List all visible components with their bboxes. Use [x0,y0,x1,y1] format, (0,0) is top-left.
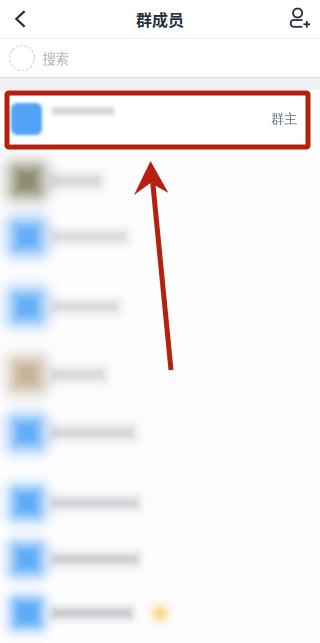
button[interactable] [0,215,320,271]
staticText: 搜索 [42,48,68,68]
button[interactable] [0,353,320,409]
button[interactable] [0,534,320,590]
button[interactable]: 群主 [0,90,320,148]
button[interactable]: Back [0,0,40,38]
button[interactable] [0,410,320,466]
button[interactable] [0,479,320,535]
button[interactable] [0,285,320,341]
button[interactable]: Add member [274,0,320,38]
staticText: 群主 [271,111,297,127]
staticText: 群成员 [136,7,184,31]
button[interactable]: 搜索 [0,39,320,77]
button[interactable] [0,587,320,643]
button[interactable] [0,159,320,215]
